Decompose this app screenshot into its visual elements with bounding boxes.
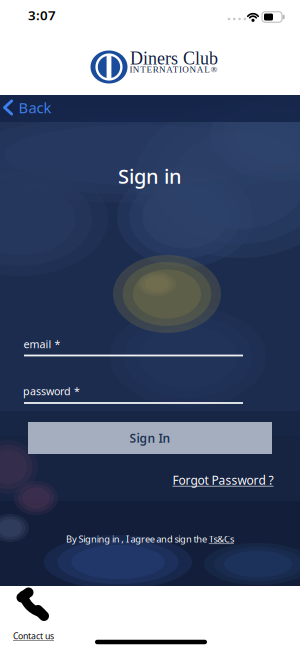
button[interactable]: Back — [2, 98, 51, 117]
button[interactable]: Forgot Password ? — [172, 472, 273, 488]
button[interactable]: Contact us — [0, 585, 66, 643]
staticText: INTERNATIONAL® — [130, 64, 217, 74]
staticText: Sign In — [129, 430, 170, 446]
button[interactable]: Sign In — [28, 422, 272, 454]
staticText: By Signing in , I agree and sign the Ts&… — [66, 533, 234, 545]
staticText: Diners Club — [130, 48, 218, 68]
staticText: email * — [23, 337, 60, 351]
button[interactable]: By Signing in , I agree and sign the Ts&… — [66, 533, 234, 545]
staticText: Sign in — [118, 163, 182, 189]
staticText: Contact us — [13, 630, 54, 642]
staticText: Back — [18, 98, 51, 117]
staticText: password * — [23, 384, 80, 398]
staticText: Forgot Password ? — [172, 472, 273, 488]
staticText: 3:07 — [28, 6, 56, 24]
